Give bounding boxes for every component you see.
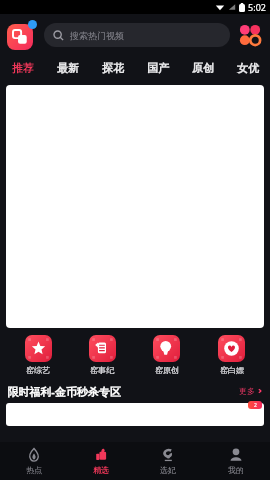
button[interactable]: 精选	[67, 442, 134, 480]
button[interactable]: Categories	[237, 22, 263, 48]
button[interactable]: 窑综艺	[6, 333, 70, 377]
staticText: 窑白嫖	[220, 365, 244, 375]
button[interactable]: 原创	[180, 55, 225, 81]
staticText: 选妃	[160, 465, 176, 475]
staticText: 窑综艺	[26, 365, 50, 375]
staticText: 精选	[93, 465, 109, 475]
button[interactable]	[6, 403, 264, 426]
staticText: 热点	[26, 465, 42, 475]
staticText: 我的	[228, 465, 244, 475]
staticText: 窑事纪	[90, 365, 114, 375]
staticText: 原创	[192, 61, 214, 75]
button[interactable]: 最新	[45, 55, 90, 81]
button[interactable]: 探花	[90, 55, 135, 81]
button[interactable]: 女优	[225, 55, 270, 81]
staticText: 5:02	[248, 1, 266, 13]
staticText: 限时福利-金币秒杀专区	[7, 384, 121, 399]
button[interactable]: 推荐	[0, 55, 45, 81]
staticText: 最新	[57, 61, 79, 75]
staticText: 探花	[102, 61, 124, 75]
staticText: 更多	[239, 386, 255, 396]
staticText: 女优	[237, 61, 259, 75]
staticText: 搜索热门视频	[70, 30, 124, 41]
staticText: 国产	[147, 61, 169, 75]
button[interactable]: 国产	[135, 55, 180, 81]
staticText: 窑原创	[155, 365, 179, 375]
button[interactable]: 更多	[239, 386, 263, 396]
staticText: 2	[254, 402, 257, 409]
staticText: 推荐	[12, 61, 34, 75]
button[interactable]: 搜索热门视频	[44, 23, 230, 47]
button[interactable]: 窑白嫖	[199, 333, 264, 377]
button[interactable]: App logo	[7, 20, 37, 50]
button[interactable]: 窑原创	[134, 333, 199, 377]
button[interactable]: 我的	[202, 442, 270, 480]
button[interactable]: 窑事纪	[70, 333, 134, 377]
button[interactable]: 热点	[0, 442, 67, 480]
button[interactable]: 选妃	[134, 442, 202, 480]
